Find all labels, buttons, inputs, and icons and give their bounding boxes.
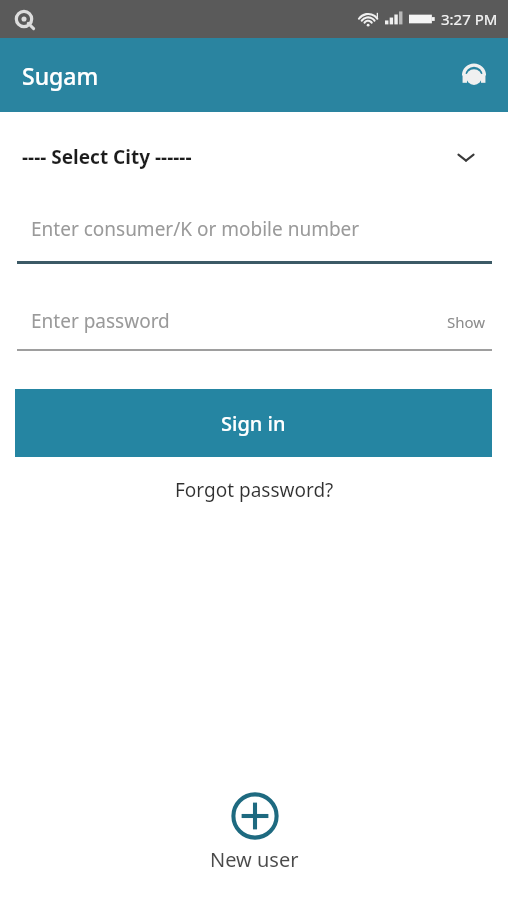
staticText: New user bbox=[210, 846, 299, 873]
button[interactable]: Customer support bbox=[454, 55, 494, 95]
staticText: Enter consumer/K or mobile number bbox=[31, 216, 360, 242]
staticText: Forgot password? bbox=[175, 477, 334, 503]
button[interactable]: ---- Select City ------ bbox=[0, 112, 508, 202]
button[interactable]: New user bbox=[210, 792, 299, 873]
button[interactable] bbox=[0, 296, 508, 351]
staticText: 3:27 PM bbox=[441, 9, 498, 29]
button[interactable]: Forgot password? bbox=[165, 471, 344, 509]
staticText: Enter password bbox=[31, 308, 170, 334]
button[interactable]: Show bbox=[443, 308, 490, 336]
button[interactable]: Sign in bbox=[15, 389, 492, 457]
staticText: Show bbox=[447, 312, 486, 332]
staticText: ---- Select City ------ bbox=[22, 144, 192, 170]
staticText: Sugam bbox=[22, 60, 99, 91]
button[interactable]: Enter consumer/K or mobile number bbox=[0, 202, 508, 264]
staticText: Sign in bbox=[221, 410, 286, 437]
